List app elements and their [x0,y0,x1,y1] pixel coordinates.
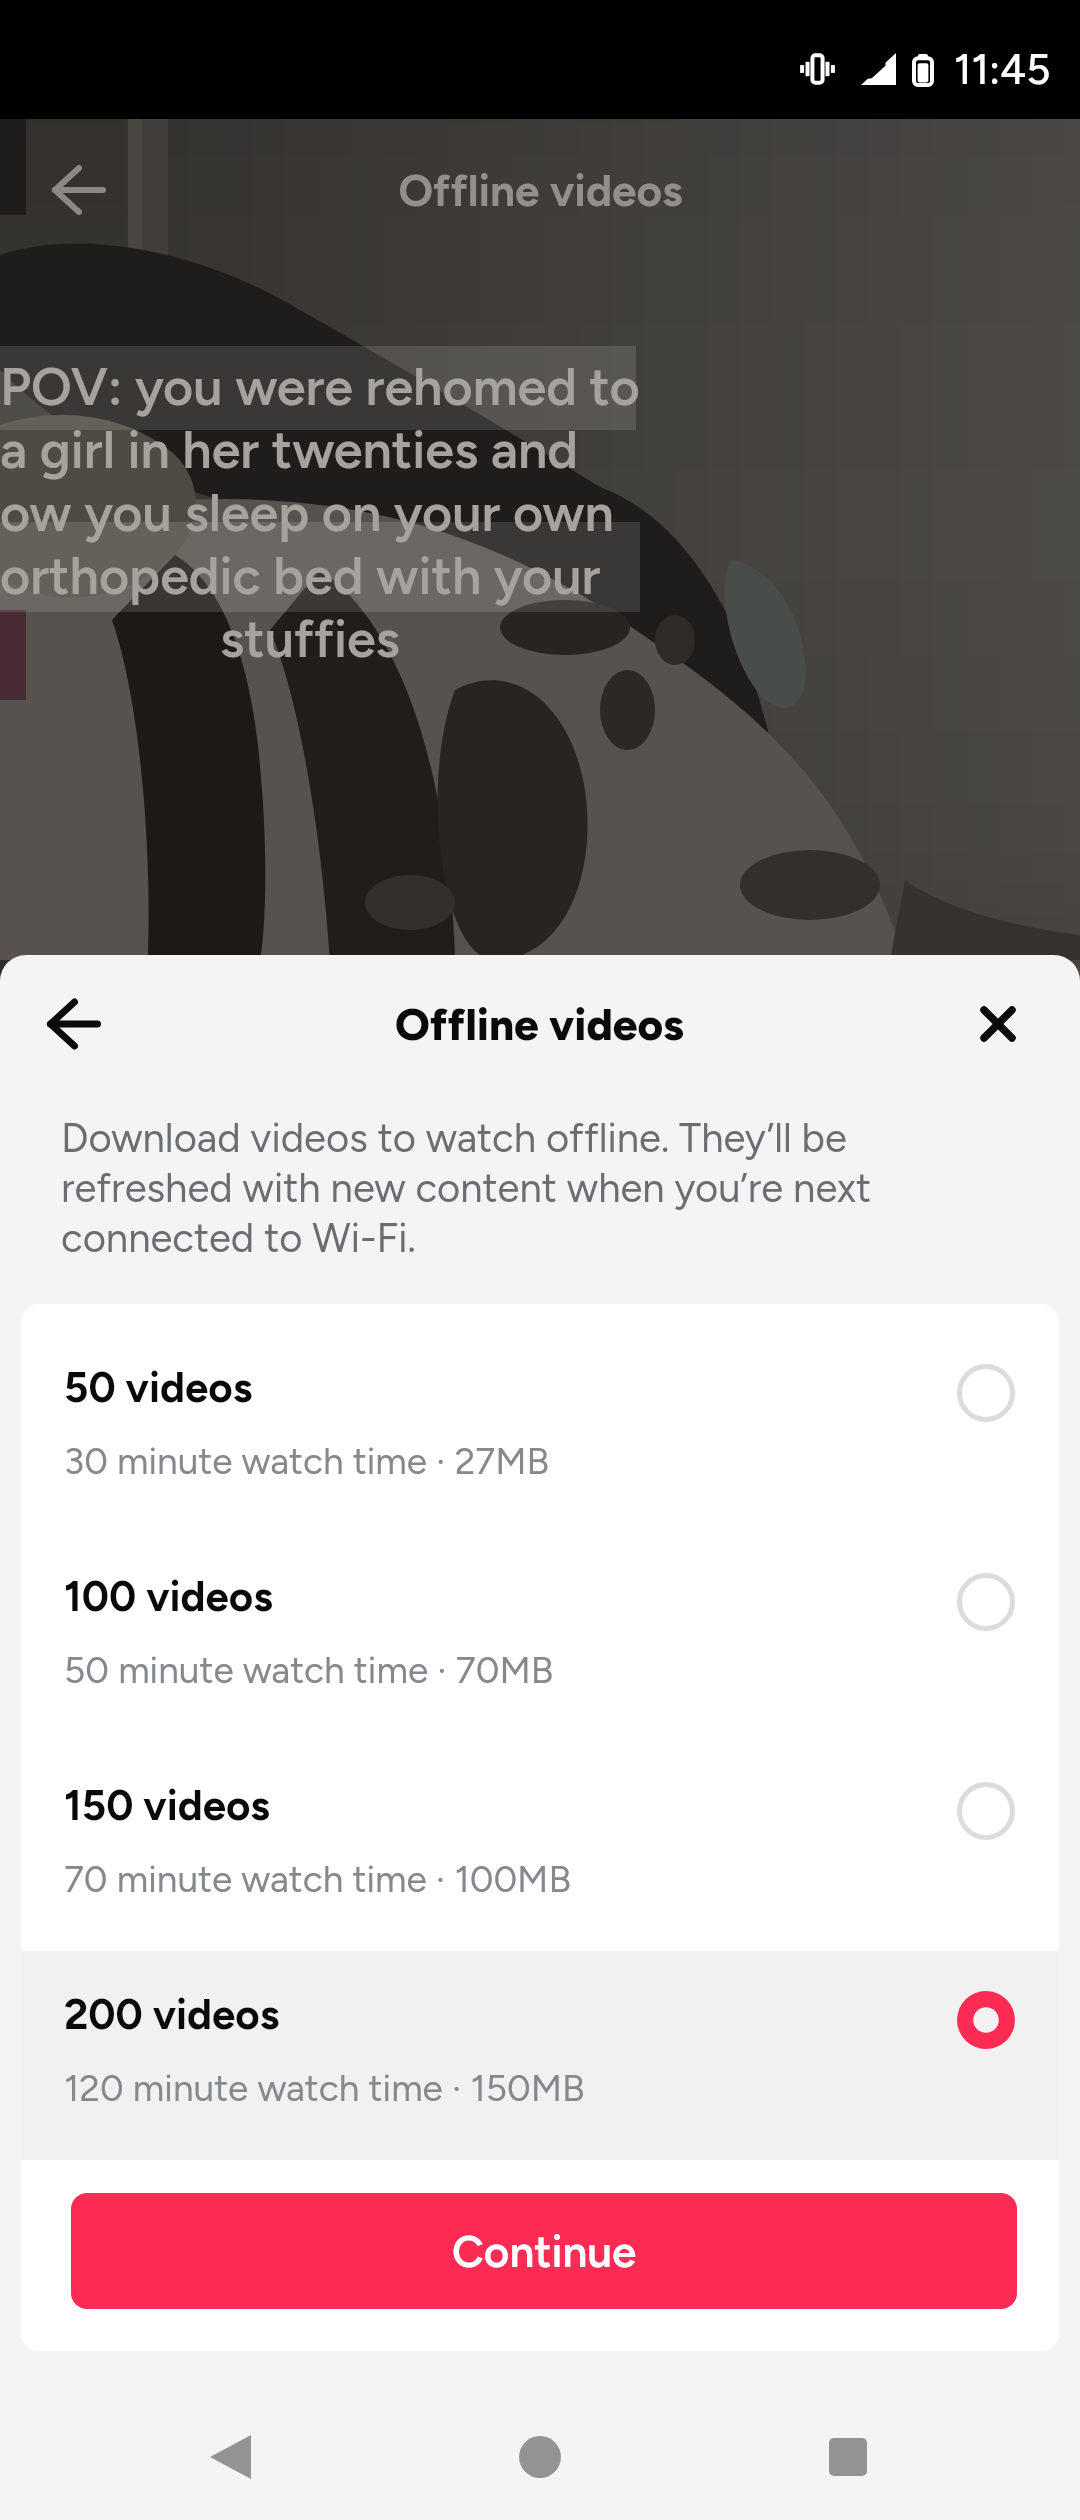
button[interactable]: Home [490,2407,590,2507]
button[interactable]: 200 videos [21,1951,1059,2160]
staticText: 120 minute watch time · 150MB [64,2066,585,2110]
staticText: POV: you were rehomed to [0,356,640,418]
staticText: 11:45 [954,44,1051,94]
button[interactable]: Back [180,2407,280,2507]
staticText: Offline videos [398,164,683,217]
button[interactable]: 150 videos [21,1742,1059,1951]
button[interactable]: Back [27,977,121,1071]
staticText: 30 minute watch time · 27MB [64,1439,550,1483]
button[interactable]: 50 videos [21,1324,1059,1533]
staticText: 50 videos [64,1362,253,1412]
staticText: ow you sleep on your own [0,482,614,544]
staticText: a girl in her twenties and [0,419,578,481]
staticText: Offline videos [395,998,685,1051]
button[interactable]: Recents [798,2407,898,2507]
staticText: 150 videos [64,1780,270,1830]
staticText: 70 minute watch time · 100MB [64,1857,572,1901]
button[interactable]: 100 videos [21,1533,1059,1742]
staticText: stuffies [220,608,400,670]
staticText: 50 minute watch time · 70MB [64,1648,554,1692]
button[interactable]: Close [964,990,1032,1058]
staticText: 100 videos [64,1571,273,1621]
staticText: Continue [452,2225,637,2278]
staticText: orthopedic bed with your [0,545,601,607]
staticText: 200 videos [64,1989,280,2039]
button[interactable]: Continue [71,2193,1017,2309]
staticText: Download videos to watch offline. They’l… [61,1114,901,1262]
